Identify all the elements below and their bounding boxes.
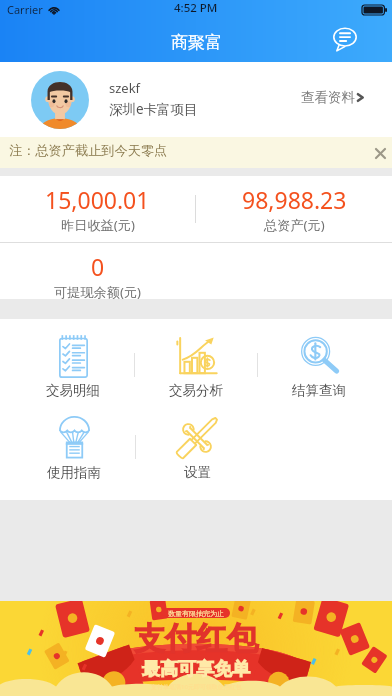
staticText: 数量有限抽完为止 [168, 609, 224, 618]
staticText: 0 [91, 251, 105, 282]
button[interactable]: 使用指南 [12, 401, 135, 483]
button[interactable]: 交易明细 [12, 319, 134, 401]
staticText: 交易明细 [46, 382, 100, 399]
staticText: 注：总资产截止到今天零点 [9, 142, 168, 159]
staticText: 商聚富 [171, 32, 222, 53]
button[interactable]: 结算查询 [258, 319, 380, 401]
button[interactable]: 98,988.23 [196, 176, 392, 242]
staticText: 可提现余额(元) [54, 283, 142, 301]
button[interactable]: 设置 [136, 401, 258, 483]
staticText: 4:52 PM [174, 0, 218, 16]
staticText: 交易分析 [169, 382, 223, 399]
staticText: 使用指南 [47, 464, 101, 481]
staticText: 15,000.01 [45, 184, 150, 215]
staticText: 深圳e卡富项目 [109, 100, 198, 118]
button[interactable]: Messages [329, 22, 361, 54]
staticText: 最高可享免单 [142, 658, 250, 681]
staticText: 昨日收益(元) [61, 216, 135, 234]
button[interactable]: szekf [0, 62, 392, 137]
button[interactable]: Close notice [370, 143, 390, 163]
button[interactable]: 15,000.01 [0, 176, 195, 242]
button[interactable]: 数量有限抽完为止 [0, 601, 392, 696]
button[interactable]: 0 [0, 248, 196, 304]
button[interactable]: 交易分析 [135, 319, 257, 401]
staticText: 结算查询 [292, 382, 346, 399]
staticText: szekf [109, 79, 141, 97]
staticText: 总资产(元) [264, 216, 325, 234]
staticText: 98,988.23 [242, 184, 347, 215]
staticText: 查看资料 [301, 89, 355, 106]
staticText: 支付红包 [134, 619, 258, 658]
staticText: Carrier [7, 2, 43, 17]
staticText: 设置 [184, 464, 211, 481]
staticText: 支付单笔满10元即可领取使用红包 [151, 683, 242, 691]
